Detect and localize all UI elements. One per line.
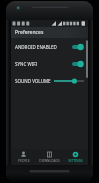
button[interactable]: ANDROID ENABLED [11, 38, 88, 55]
button[interactable]: SOUND VOLUME [11, 72, 88, 89]
button[interactable]: Toggle ANDROID ENABLED [71, 43, 84, 51]
staticText: DOWNLOADS [39, 159, 60, 163]
staticText: Preferences [15, 29, 44, 36]
staticText: SOUND VOLUME [15, 78, 51, 84]
button[interactable]: DOWNLOADS [36, 149, 62, 165]
button[interactable]: Toggle SYNC WIFI [71, 60, 84, 68]
button[interactable]: Adjust SOUND VOLUME [54, 77, 84, 85]
staticText: SETTINGS [68, 159, 83, 163]
staticText: SYNC WIFI [15, 61, 71, 67]
button[interactable]: PEOPLE [11, 149, 36, 165]
button[interactable]: SETTINGS [62, 149, 88, 165]
button[interactable]: SYNC WIFI [11, 55, 88, 72]
staticText: PEOPLE [18, 159, 30, 163]
staticText: ANDROID ENABLED [15, 44, 71, 50]
